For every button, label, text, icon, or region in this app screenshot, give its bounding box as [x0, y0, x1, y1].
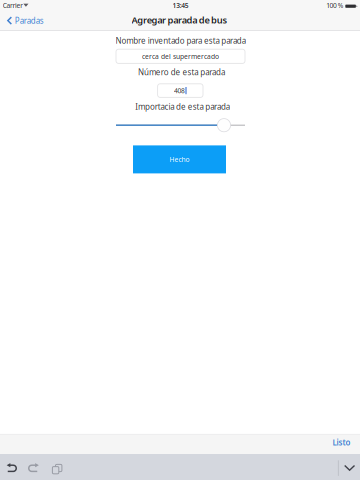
staticText: Número de esta parada: [138, 67, 225, 77]
staticText: 408: [174, 86, 185, 95]
staticText: Nombre inventado para esta parada: [115, 35, 246, 46]
button[interactable]: Paste: [45, 457, 67, 479]
button[interactable]: Hide keyboard: [335, 457, 360, 479]
button[interactable]: Paradas: [2, 11, 49, 31]
staticText: Listo: [333, 437, 351, 448]
staticText: 100 %: [326, 1, 344, 10]
button[interactable]: Hecho: [133, 145, 226, 173]
staticText: Importacia de esta parada: [135, 101, 230, 112]
button[interactable]: Redo: [23, 457, 45, 479]
staticText: Hecho: [169, 155, 189, 164]
staticText: 13:45: [173, 1, 189, 10]
staticText: Carrier: [3, 1, 23, 10]
button[interactable]: cerca del supermercado: [116, 49, 245, 63]
button[interactable]: 408: [158, 84, 203, 97]
staticText: Paradas: [15, 15, 44, 26]
button[interactable]: Listo: [326, 432, 358, 452]
staticText: cerca del supermercado: [142, 52, 219, 61]
button[interactable]: Undo: [0, 457, 22, 479]
staticText: Agregar parada de bus: [131, 14, 227, 26]
